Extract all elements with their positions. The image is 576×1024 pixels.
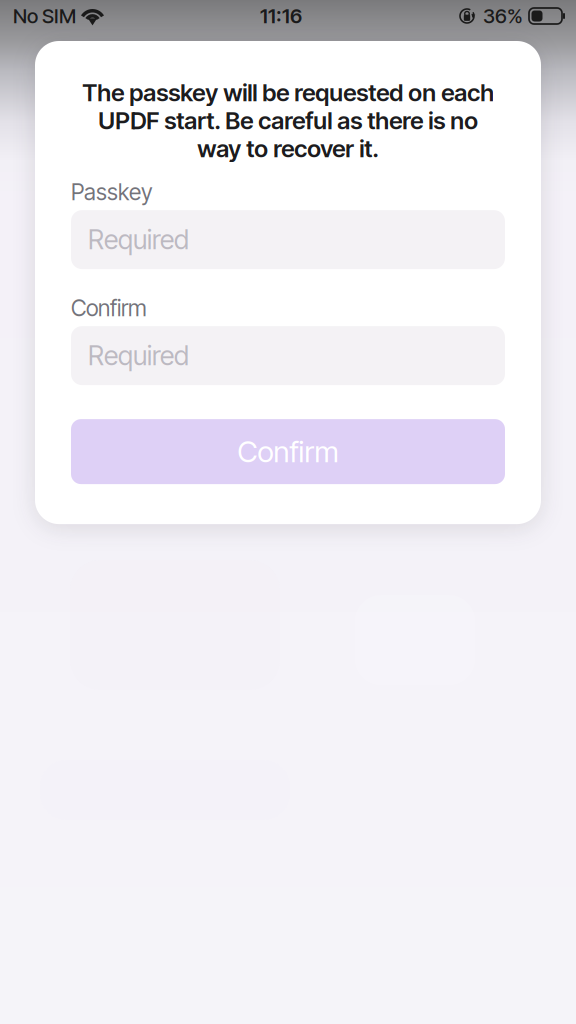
staticText: Required	[88, 223, 189, 256]
staticText: 11:16	[260, 4, 302, 28]
button[interactable]: Confirm	[71, 419, 505, 484]
staticText: Required	[88, 339, 189, 372]
button[interactable]: Required	[71, 326, 505, 385]
staticText: No SIM	[13, 4, 76, 28]
staticText: The passkey will be requested on each UP…	[82, 78, 494, 163]
staticText: Confirm	[71, 294, 147, 322]
staticText: Confirm	[237, 434, 338, 469]
staticText: 36%	[483, 4, 523, 28]
button[interactable]: Required	[71, 210, 505, 269]
staticText: Passkey	[71, 178, 153, 206]
